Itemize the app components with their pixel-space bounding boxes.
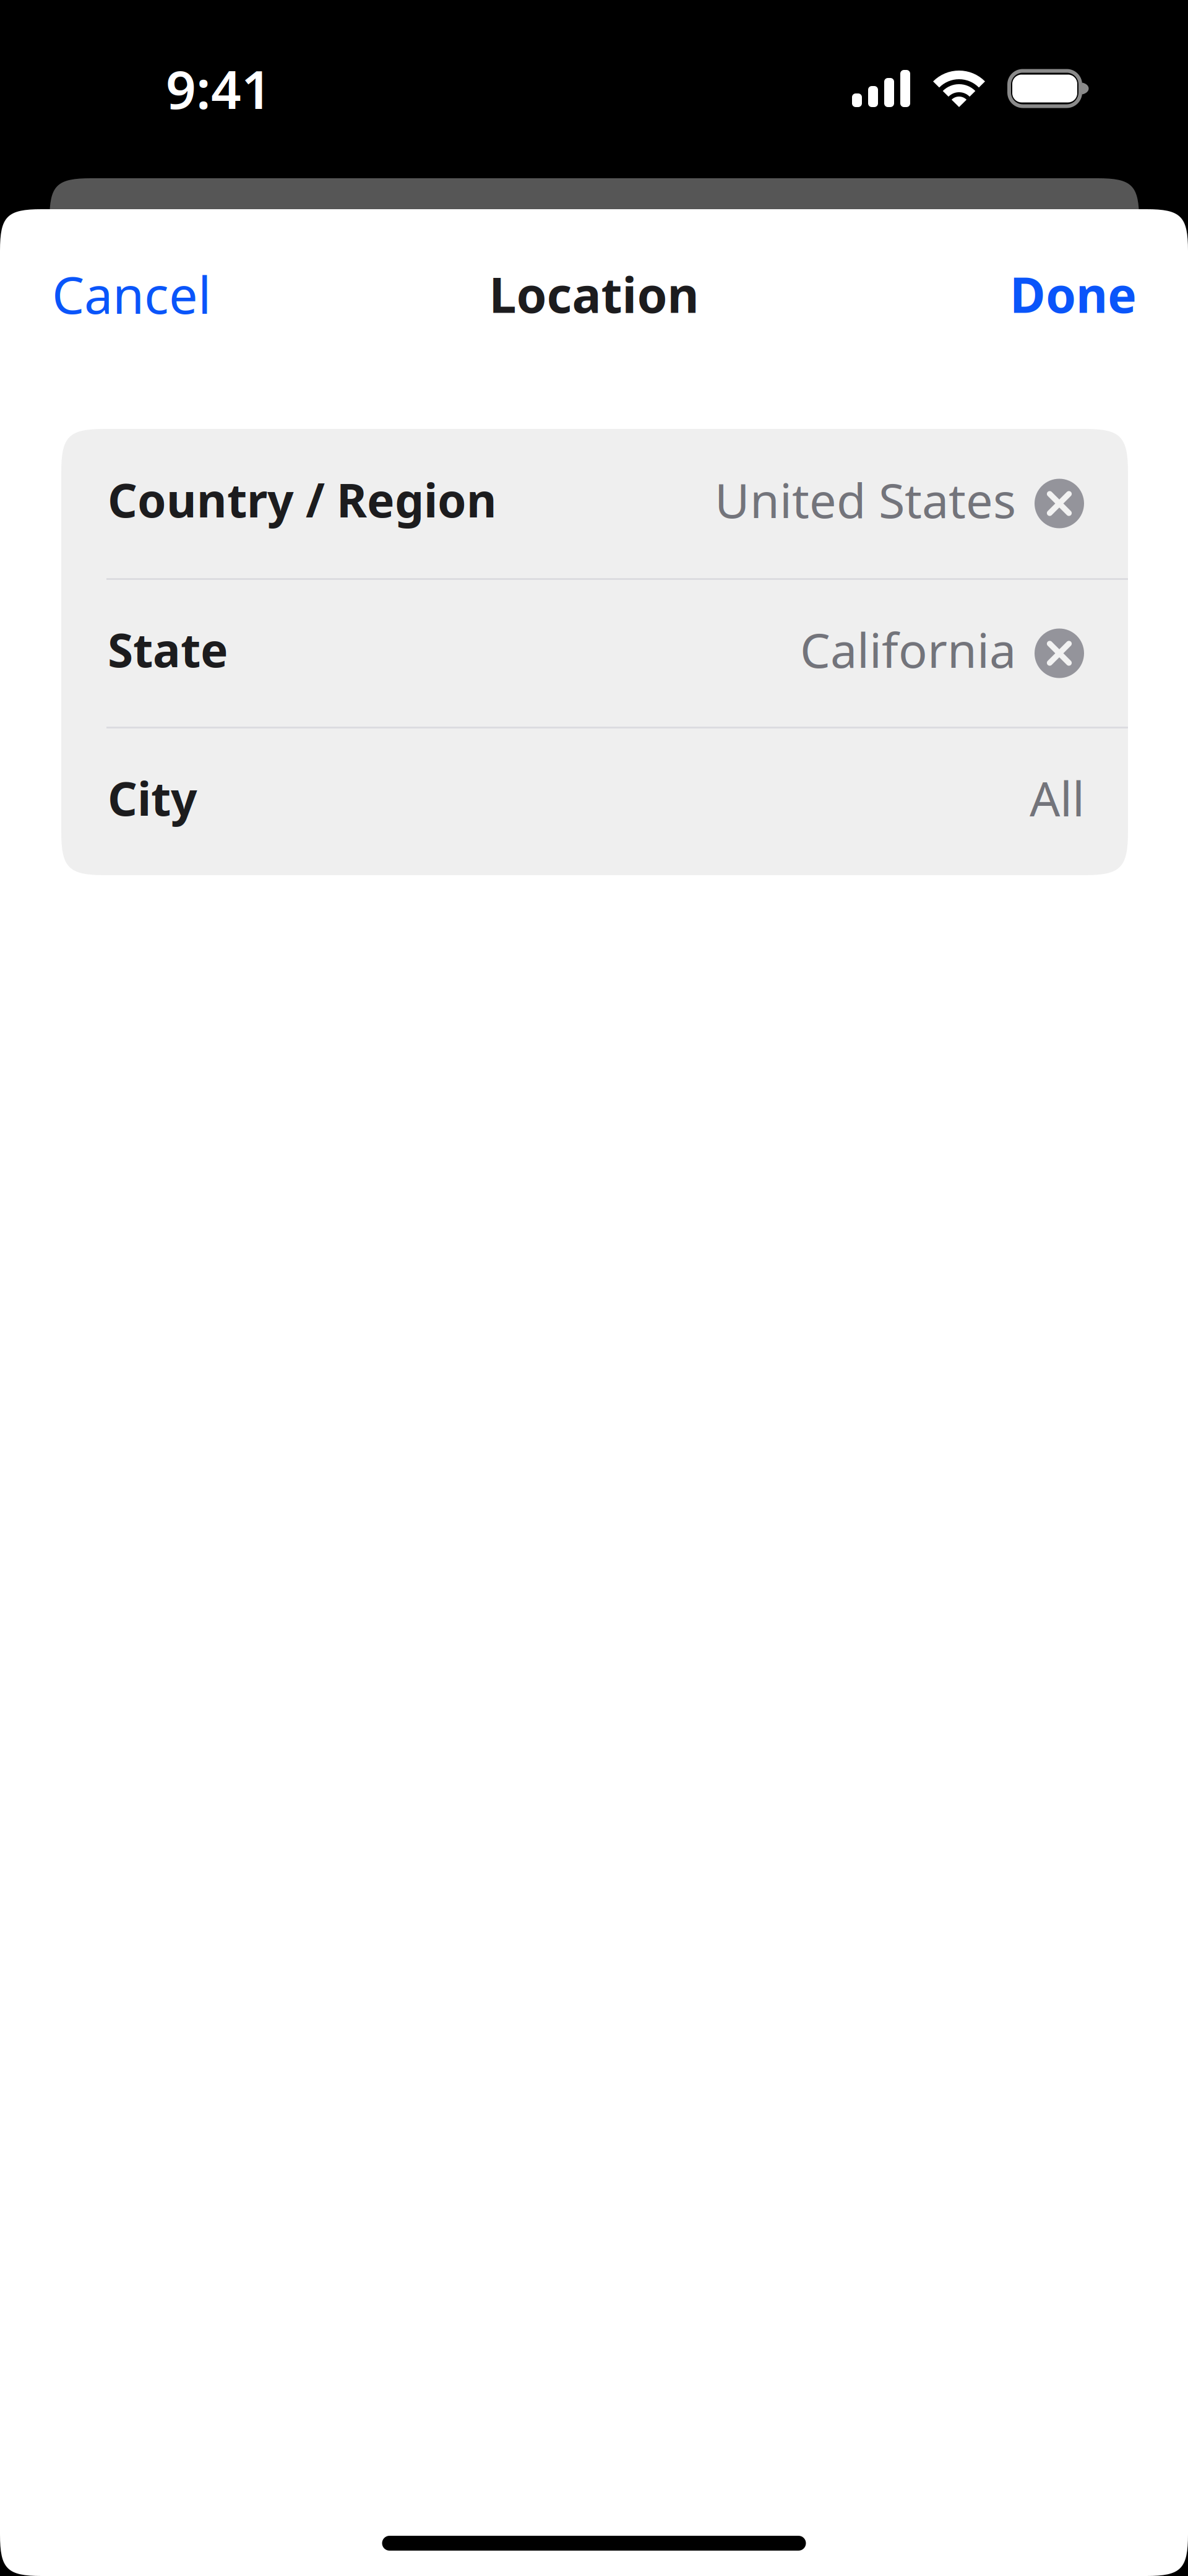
button[interactable]: Cancel: [52, 241, 211, 347]
staticText: United States: [715, 468, 1016, 531]
staticText: Cancel: [52, 260, 211, 328]
button[interactable]: Done: [1010, 243, 1137, 345]
staticText: Done: [1010, 262, 1137, 326]
staticText: City: [108, 767, 197, 829]
button[interactable]: City: [61, 728, 1128, 875]
staticText: California: [800, 618, 1016, 681]
staticText: 9:41: [166, 53, 272, 124]
staticText: State: [108, 619, 228, 680]
button[interactable]: Country / Region: [61, 429, 1128, 578]
staticText: Location: [489, 262, 699, 326]
button[interactable]: State: [61, 580, 1128, 727]
staticText: Country / Region: [108, 469, 497, 530]
staticText: All: [1030, 766, 1085, 830]
